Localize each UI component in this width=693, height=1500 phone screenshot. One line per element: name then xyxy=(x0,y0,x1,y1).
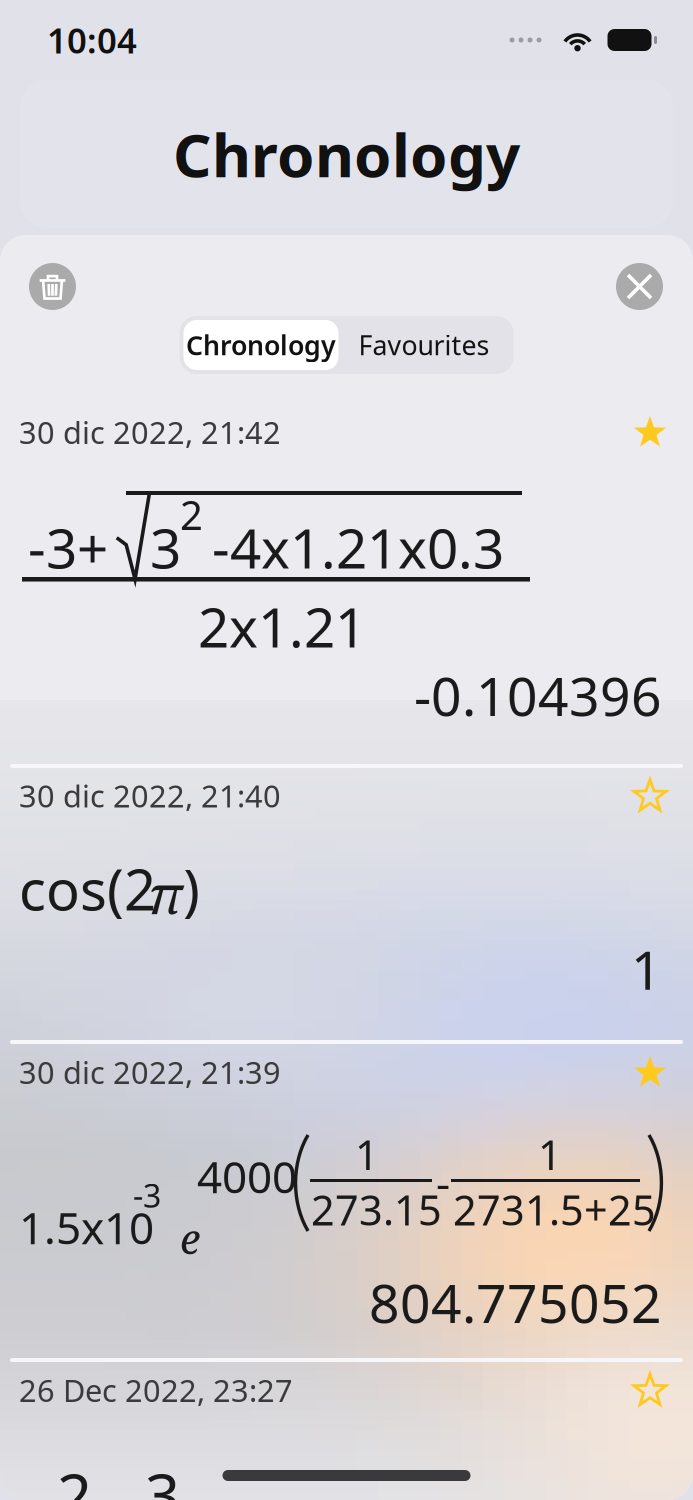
staticText: 26 Dec 2022, 23:27 xyxy=(19,1370,293,1410)
staticText: -3+ xyxy=(28,511,108,584)
staticText: 804.775052 xyxy=(369,1267,662,1338)
staticText: 2 xyxy=(180,488,203,541)
button[interactable]: Chronology xyxy=(183,320,338,370)
staticText: 3 xyxy=(145,1454,180,1500)
staticText: -3 xyxy=(133,1174,161,1216)
staticText: 4000 xyxy=(197,1147,297,1205)
button[interactable]: Add to favourites xyxy=(627,1367,673,1413)
staticText: Chronology xyxy=(173,114,520,194)
staticText: -4x1.21x0.3 xyxy=(212,511,504,584)
staticText: 30 dic 2022, 21:39 xyxy=(19,1052,281,1092)
staticText: π xyxy=(148,857,182,929)
button[interactable]: Remove from favourites xyxy=(627,409,673,455)
staticText: 1.5x10 xyxy=(19,1198,154,1256)
button[interactable]: Remove from favourites xyxy=(627,1049,673,1095)
staticText: 2731.5+25 xyxy=(453,1182,656,1237)
staticText: cos(2 xyxy=(19,852,156,926)
staticText: e xyxy=(180,1210,200,1266)
staticText: Favourites xyxy=(358,327,489,363)
button[interactable]: Delete history xyxy=(29,263,76,310)
staticText: 3 xyxy=(150,511,181,584)
staticText: 2x1.21 xyxy=(198,590,366,663)
staticText: 30 dic 2022, 21:42 xyxy=(19,412,281,452)
staticText: 273.15 xyxy=(311,1182,442,1237)
button[interactable]: Close xyxy=(616,263,663,310)
staticText: 10:04 xyxy=(47,17,137,63)
staticText: 2 xyxy=(57,1454,92,1500)
staticText: -0.104396 xyxy=(414,660,662,731)
staticText: 1 xyxy=(355,1127,379,1182)
staticText: 1 xyxy=(631,934,662,1004)
staticText: 1 xyxy=(538,1127,562,1182)
staticText: - xyxy=(436,1153,450,1211)
button[interactable]: Add to favourites xyxy=(627,773,673,819)
button[interactable]: Favourites xyxy=(338,320,509,370)
staticText: ) xyxy=(183,852,200,926)
staticText: Chronology xyxy=(186,327,336,363)
staticText: 30 dic 2022, 21:40 xyxy=(19,775,281,816)
